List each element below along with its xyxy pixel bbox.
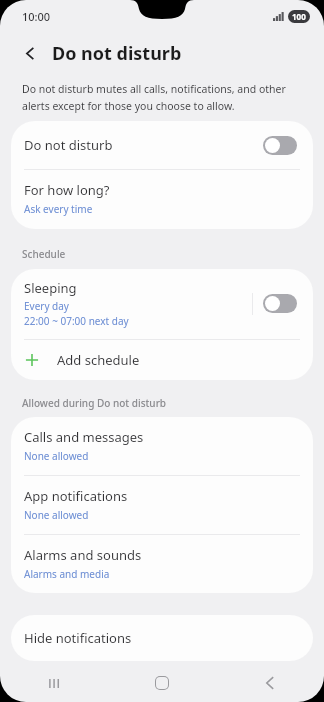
staticText: Sleeping: [24, 279, 77, 297]
staticText: Calls and messages: [24, 428, 144, 446]
button[interactable]: Toggle: [263, 294, 297, 313]
button[interactable]: Back: [16, 39, 44, 67]
button[interactable]: Hide notifications: [11, 615, 313, 661]
button[interactable]: Calls and messages: [11, 417, 313, 475]
staticText: Do not disturb: [24, 136, 263, 154]
staticText: Do not disturb: [52, 41, 182, 66]
staticText: Alarms and media: [24, 567, 110, 581]
staticText: Add schedule: [57, 351, 140, 369]
staticText: Do not disturb mutes all calls, notifica…: [22, 82, 300, 113]
staticText: None allowed: [24, 508, 89, 522]
button[interactable]: Sleeping: [11, 269, 313, 339]
button[interactable]: Recent apps: [31, 664, 77, 702]
button[interactable]: Home: [139, 664, 185, 702]
staticText: 22:00 ~ 07:00 next day: [24, 314, 129, 328]
staticText: Hide notifications: [24, 629, 132, 647]
staticText: Every day: [24, 299, 69, 313]
staticText: Ask every time: [24, 202, 93, 216]
staticText: 100: [292, 11, 306, 22]
button[interactable]: Alarms and sounds: [11, 535, 313, 593]
button[interactable]: Toggle: [263, 136, 297, 155]
button[interactable]: For how long?: [11, 170, 313, 229]
staticText: App notifications: [24, 487, 128, 505]
button[interactable]: Add schedule: [11, 340, 313, 380]
button[interactable]: Do not disturb: [11, 121, 313, 169]
button[interactable]: Back: [247, 664, 293, 702]
staticText: Allowed during Do not disturb: [22, 396, 167, 410]
staticText: 10:00: [22, 9, 51, 24]
button[interactable]: App notifications: [11, 476, 313, 534]
staticText: Alarms and sounds: [24, 546, 142, 564]
staticText: For how long?: [24, 181, 110, 199]
staticText: Schedule: [22, 247, 66, 261]
staticText: None allowed: [24, 449, 89, 463]
